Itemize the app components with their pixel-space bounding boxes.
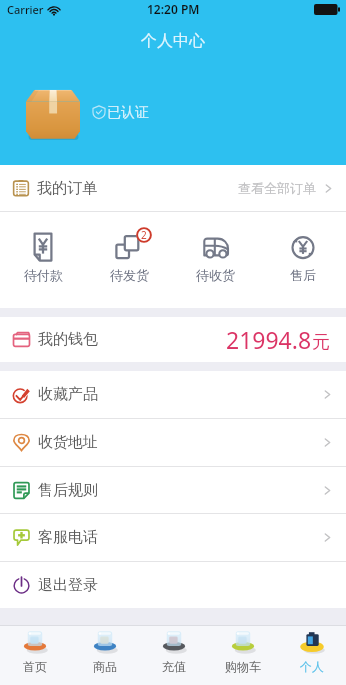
button[interactable]: 我的订单 [0,165,346,211]
staticText: 已认证 [107,104,149,122]
staticText: 收藏产品 [38,385,98,404]
button[interactable]: 个人 [277,626,346,674]
staticText: 元 [312,331,330,354]
staticText: 待发货 [110,267,149,283]
staticText: 我的钱包 [38,330,98,349]
staticText: 个人中心 [0,31,346,51]
button[interactable]: 售后规则 [0,467,346,513]
button[interactable]: 我的钱包 [0,316,346,362]
staticText: Carrier [7,2,44,17]
button[interactable]: 首页 [0,626,70,674]
staticText: 首页 [23,659,47,674]
button[interactable]: 待付款 [0,212,86,283]
button[interactable]: 充值 [139,626,208,674]
button[interactable]: 购物车 [208,626,277,674]
staticText: 购物车 [225,659,261,674]
staticText: 个人 [300,659,324,674]
staticText: 21994.8 [226,324,312,355]
staticText: 客服电话 [38,528,98,547]
staticText: 收货地址 [38,433,98,452]
staticText: 待收货 [196,267,235,283]
staticText: 我的订单 [37,179,97,198]
button[interactable]: 售后 [259,212,346,283]
button[interactable]: 收藏产品 [0,371,346,418]
button[interactable]: 收货地址 [0,419,346,466]
staticText: 商品 [93,659,117,674]
staticText: 售后规则 [38,481,98,500]
button[interactable]: 2 [86,212,172,283]
button[interactable]: 退出登录 [0,562,346,608]
staticText: 售后 [290,267,316,283]
staticText: 退出登录 [38,576,98,595]
button[interactable]: 客服电话 [0,514,346,561]
button[interactable]: 待收货 [172,212,259,283]
staticText: 待付款 [24,267,63,283]
staticText: 12:20 PM [147,1,200,17]
staticText: 查看全部订单 [238,180,316,196]
staticText: 2 [141,228,147,242]
staticText: 充值 [162,659,186,674]
button[interactable]: 商品 [70,626,139,674]
